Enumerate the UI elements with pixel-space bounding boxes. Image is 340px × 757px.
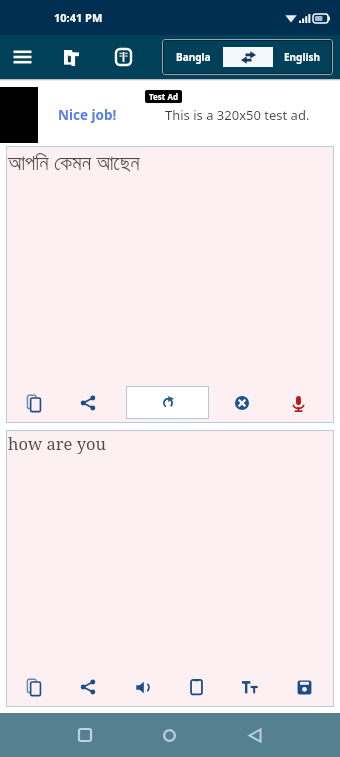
button[interactable]: Recents [42,713,127,757]
staticText: Test Ad [149,91,178,102]
staticText: Nice job! [58,106,117,124]
button[interactable]: Back [212,713,297,757]
button[interactable]: Home [127,713,212,757]
staticText: This is a 320x50 test ad. [165,106,310,124]
button[interactable]: Translate [45,35,97,79]
button[interactable]: English [273,41,331,73]
staticText: Bangla [176,50,211,64]
button[interactable]: Text size [233,670,267,704]
button[interactable]: Speak [126,670,160,704]
button[interactable]: Paste [179,670,213,704]
button[interactable]: Clear [225,386,259,420]
button[interactable]: Dictionary [97,35,149,79]
button[interactable]: Menu [0,35,45,79]
staticText: English [284,50,320,64]
button[interactable]: Save [287,670,321,704]
staticText: 10:41 PM [54,10,103,25]
button[interactable]: Copy [17,670,51,704]
staticText: how are you [8,432,107,454]
button[interactable]: Share [71,386,105,420]
button[interactable]: Voice input [281,386,315,420]
button[interactable]: Translate [126,386,209,419]
staticText: আপনি কেমন আছেন [8,148,140,177]
button[interactable]: Share [71,670,105,704]
button[interactable]: Copy [17,386,51,420]
button[interactable]: Bangla [164,41,223,73]
button[interactable]: Swap languages [223,47,273,67]
